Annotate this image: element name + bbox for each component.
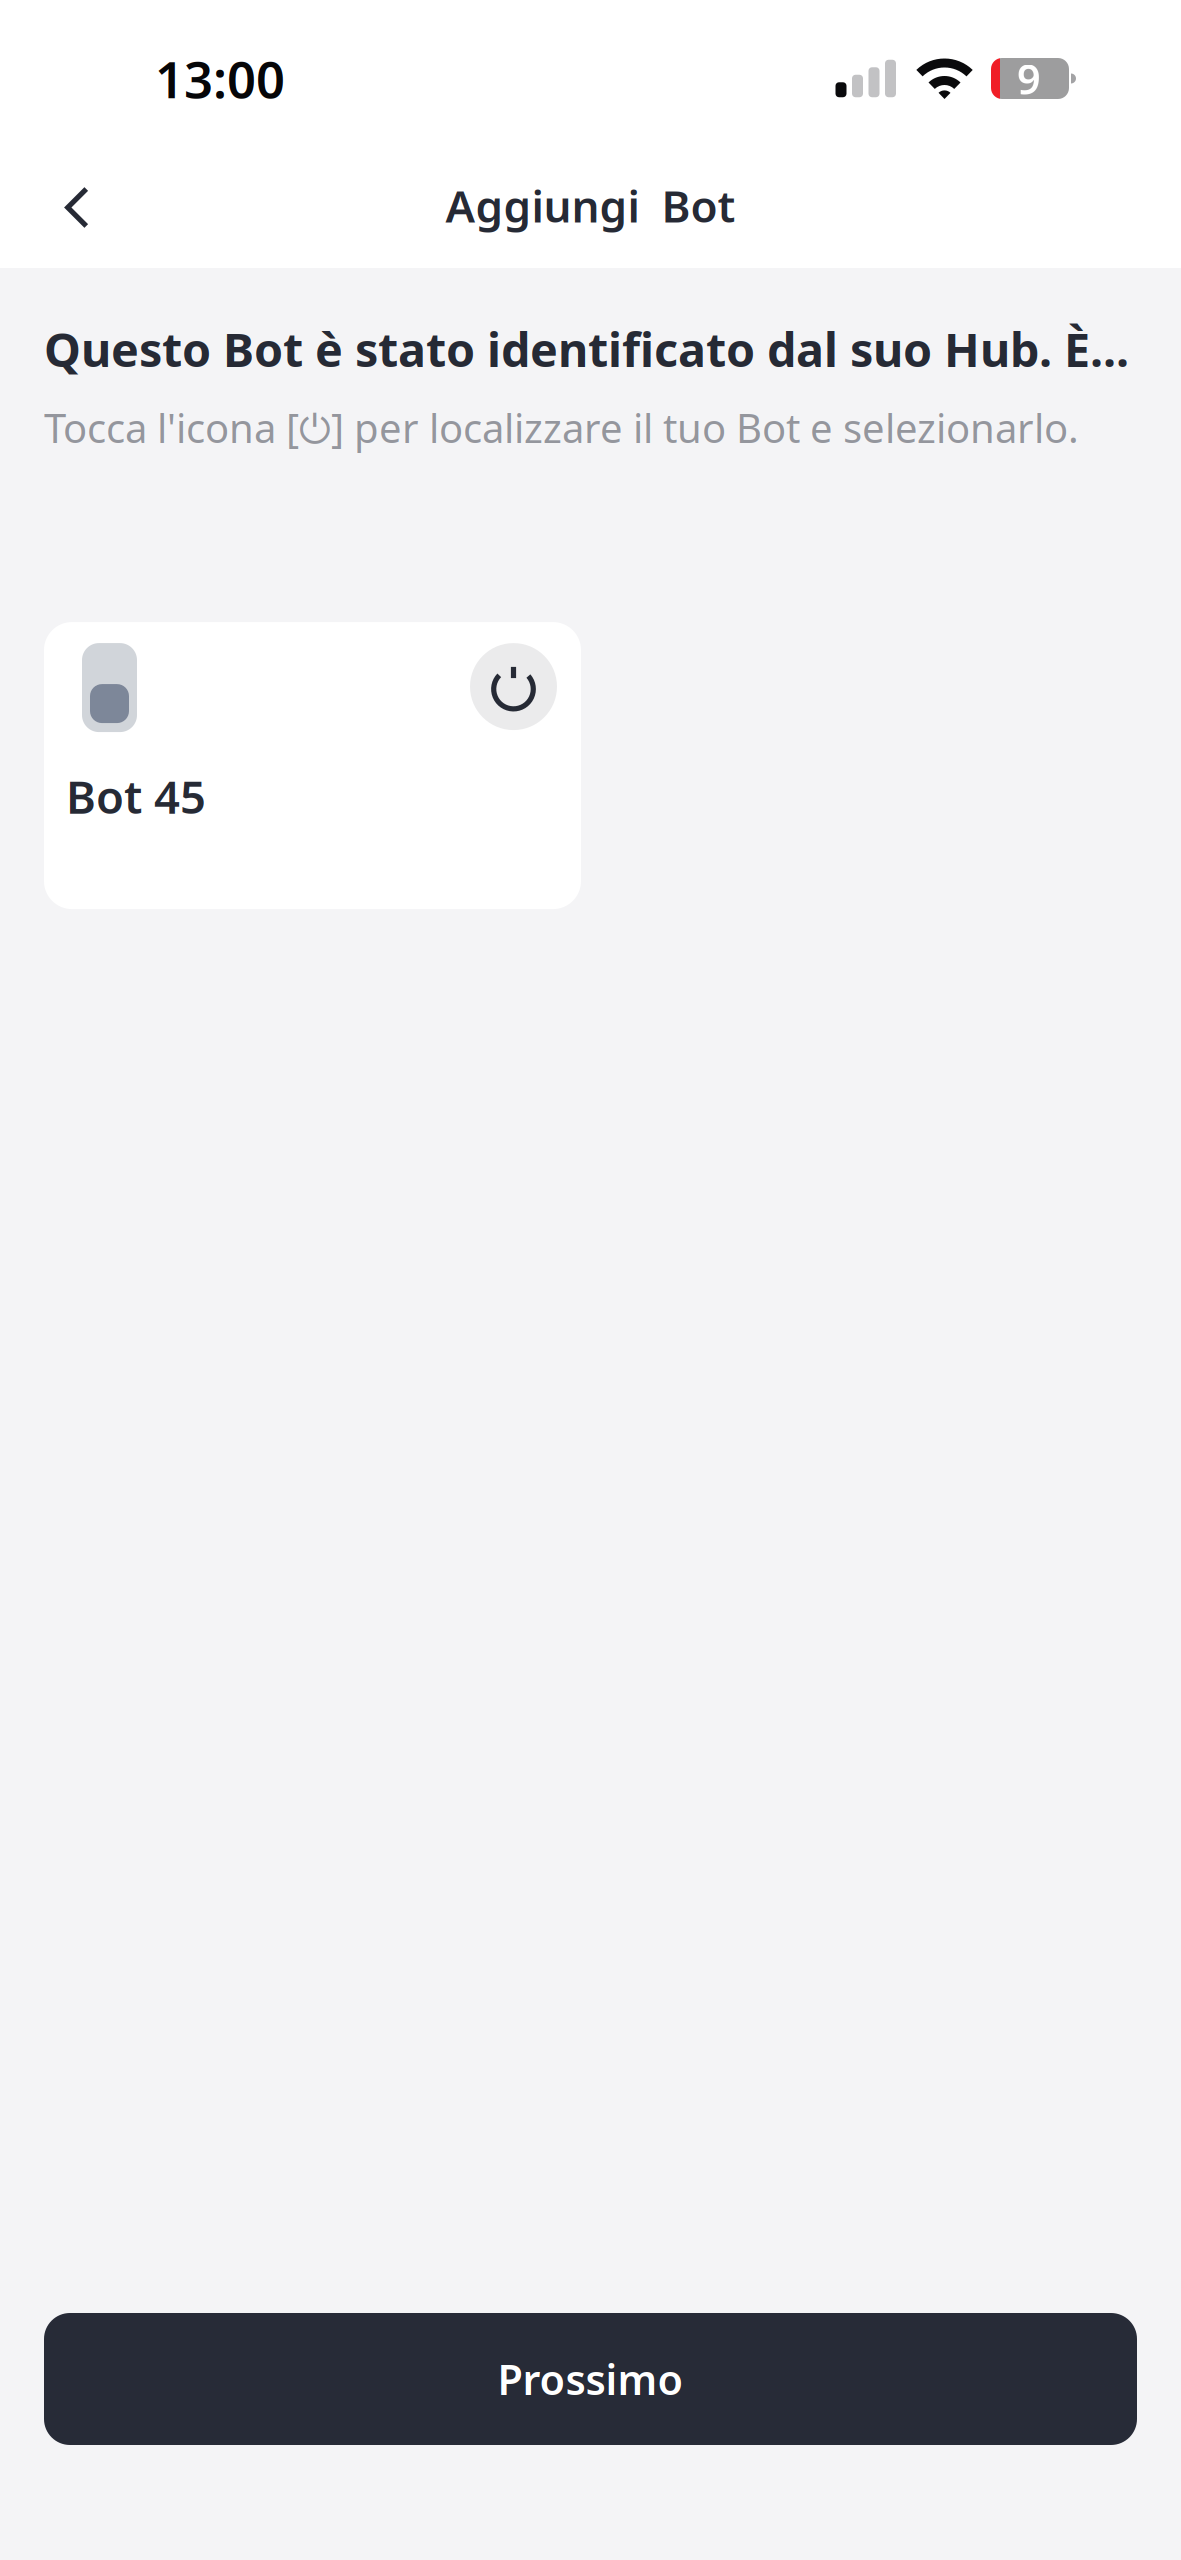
button[interactable]: Identify Bot: [470, 643, 557, 730]
button[interactable]: Back: [29, 159, 125, 255]
button[interactable]: Bot 45: [44, 622, 581, 909]
staticText: Bot 45: [66, 766, 206, 826]
staticText: 13:00: [155, 45, 285, 112]
staticText: Tocca l'icona [⏻] per localizzare il tuo…: [44, 401, 1079, 454]
staticText: Aggiungi Bot: [445, 176, 735, 235]
staticText: 9: [1017, 51, 1041, 106]
staticText: Prossimo: [497, 2352, 683, 2406]
staticText: Questo Bot è stato identificato dal suo …: [44, 318, 1129, 380]
button[interactable]: Prossimo: [44, 2313, 1137, 2445]
